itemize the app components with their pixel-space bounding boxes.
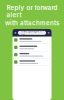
staticText: Reply or forward alert xyxy=(6,4,57,19)
button[interactable] xyxy=(12,37,64,44)
staticText: mail.google.com xyxy=(20,29,43,36)
button[interactable] xyxy=(12,51,64,59)
staticText: with attachments xyxy=(5,19,59,27)
button[interactable] xyxy=(12,44,64,51)
button[interactable] xyxy=(12,59,64,66)
